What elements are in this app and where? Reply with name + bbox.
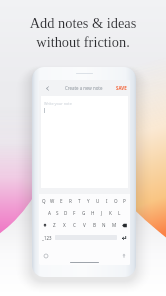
button[interactable]: X [59,221,69,229]
button[interactable]: N [99,221,109,229]
staticText: M [112,222,117,228]
staticText: Write your note [44,101,72,106]
button[interactable]: D [61,209,70,217]
staticText: Create a new note [65,85,103,91]
staticText: F [73,210,76,216]
button[interactable]: G [79,209,88,217]
button[interactable]: W [48,197,57,205]
button[interactable]: H [88,209,97,217]
button[interactable]: L [115,209,124,217]
button[interactable]: S [53,209,61,217]
button[interactable]: O [111,197,120,205]
staticText: SAVE [116,85,127,91]
button[interactable]: Y [84,197,93,205]
staticText: P [123,198,126,204]
button[interactable]: V [79,221,89,229]
staticText: Q [42,198,46,204]
button[interactable]: Enter [121,235,127,241]
staticText: R [69,198,72,204]
button[interactable]: A [45,209,53,217]
button[interactable]: J [97,209,106,217]
button[interactable]: Q [40,197,48,205]
staticText: X [63,222,66,228]
staticText: V [83,222,86,228]
staticText: U [96,198,100,204]
button[interactable]: R [66,197,75,205]
button[interactable]: Z [50,221,59,229]
staticText: B [93,222,96,228]
staticText: A [48,210,51,216]
staticText: K [109,210,112,216]
staticText: E [60,198,63,204]
staticText: Add notes & ideas without friction. [0,15,166,50]
button[interactable]: Microphone [120,252,127,259]
staticText: N [102,222,106,228]
staticText: J [101,210,103,216]
button[interactable]: E [57,197,66,205]
staticText: W [50,198,55,204]
button[interactable]: M [109,221,119,229]
staticText: T [78,198,81,204]
staticText: Z [53,222,56,228]
staticText: S [56,210,59,216]
staticText: _123 [42,235,52,241]
staticText: O [114,198,118,204]
button[interactable]: F [70,209,79,217]
button[interactable]: Shift [40,221,50,229]
staticText: H [91,210,95,216]
button[interactable]: K [106,209,115,217]
staticText: Y [87,198,90,204]
staticText: G [82,210,86,216]
button[interactable]: SAVE [116,85,127,91]
staticText: C [73,222,76,228]
button[interactable]: Emoji [42,252,49,259]
button[interactable]: Back [43,84,52,93]
staticText: I [106,198,108,204]
staticText: L [118,210,121,216]
button[interactable]: B [89,221,99,229]
button[interactable]: T [75,197,84,205]
button[interactable]: P [120,197,129,205]
staticText: D [64,210,68,216]
button[interactable]: I [102,197,111,205]
button[interactable]: U [93,197,102,205]
button[interactable]: Backspace [119,221,129,229]
button[interactable]: C [69,221,79,229]
button[interactable]: _123 [42,235,52,241]
